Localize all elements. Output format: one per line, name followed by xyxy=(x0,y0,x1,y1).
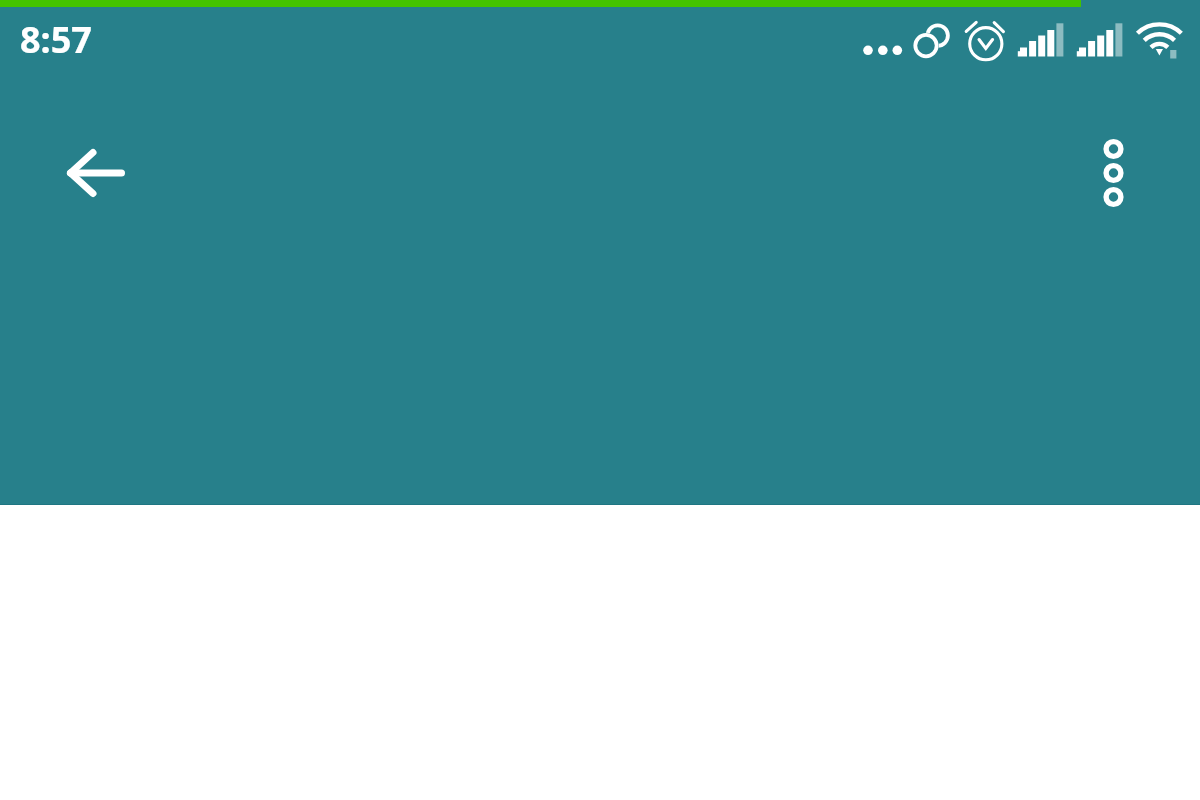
staticText: 8:57 xyxy=(20,15,92,64)
button[interactable]: Navigate up xyxy=(51,128,140,217)
button[interactable]: More options xyxy=(1069,128,1158,217)
